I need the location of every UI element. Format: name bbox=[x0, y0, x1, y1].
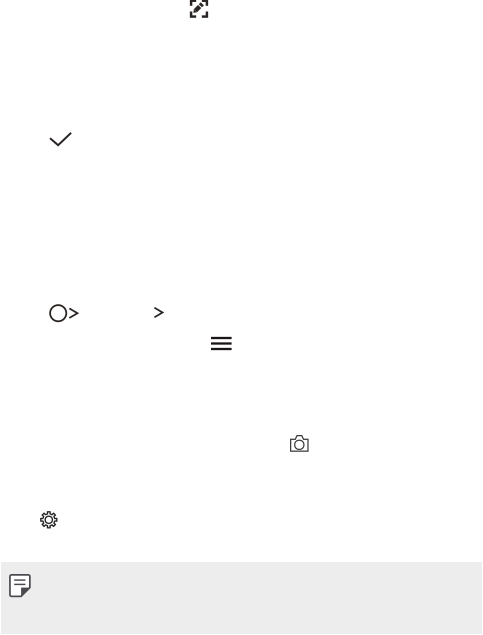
button[interactable]: Markup bbox=[190, 0, 208, 18]
button[interactable]: Notes bbox=[9, 574, 31, 597]
button[interactable]: Menu bbox=[211, 337, 232, 350]
button[interactable]: Account bbox=[50, 305, 78, 322]
button[interactable]: Done bbox=[49, 132, 72, 146]
button[interactable]: Camera bbox=[290, 435, 309, 452]
button[interactable]: Open bbox=[154, 307, 163, 318]
button[interactable]: Settings bbox=[40, 511, 58, 529]
